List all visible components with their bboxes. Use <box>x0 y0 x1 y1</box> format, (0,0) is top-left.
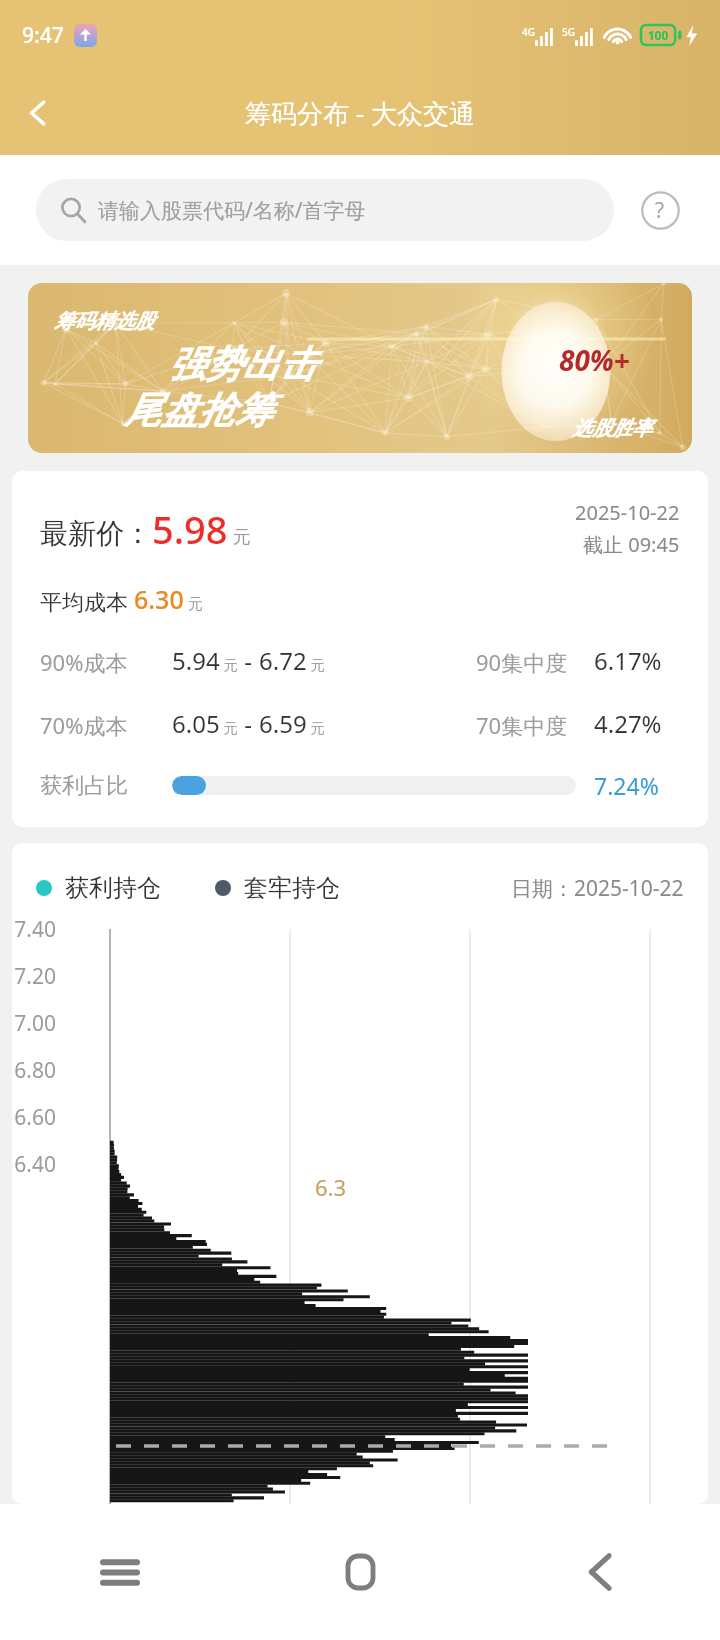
button[interactable]: Help <box>636 186 684 234</box>
staticText: 4.27% <box>594 707 680 740</box>
staticText: 100 <box>640 27 676 43</box>
staticText: 强势出击 <box>168 341 316 388</box>
staticText: 截止 09:45 <box>583 531 680 558</box>
staticText: 套牢持仓 <box>244 873 340 903</box>
staticText: 6.59 <box>259 707 307 740</box>
staticText: 6.72 <box>259 644 307 677</box>
button[interactable]: Back <box>0 70 76 155</box>
staticText: 筹码精选股 <box>54 309 154 334</box>
staticText: 获利持仓 <box>65 873 161 903</box>
button[interactable]: Back <box>480 1504 720 1640</box>
staticText: 70集中度 <box>476 710 568 740</box>
staticText: ? <box>655 196 665 225</box>
staticText: 元 <box>220 655 238 674</box>
staticText: 日期：2025-10-22 <box>511 874 684 903</box>
staticText: 元 <box>184 593 203 613</box>
staticText: 7.24% <box>594 770 680 801</box>
staticText: 元 <box>307 718 325 737</box>
staticText: 90%成本 <box>40 647 172 677</box>
staticText: 6.60 <box>12 1103 56 1132</box>
button[interactable]: Home <box>240 1504 480 1640</box>
staticText: 元 <box>307 655 325 674</box>
staticText: 6.05 <box>172 707 220 740</box>
staticText: 70%成本 <box>40 710 172 740</box>
staticText: 5.98 <box>152 503 228 555</box>
staticText: 元 <box>228 524 251 549</box>
staticText: 6.30 <box>134 582 184 616</box>
staticText: 选股胜率 <box>572 416 652 441</box>
staticText: 9:47 <box>22 21 64 50</box>
staticText: 6.40 <box>12 1150 56 1179</box>
staticText: 2025-10-22 <box>575 499 680 526</box>
staticText: 7.40 <box>12 915 56 944</box>
staticText: 元 <box>220 718 238 737</box>
button[interactable]: 请输入股票代码/名称/首字母 <box>36 179 614 241</box>
staticText: 最新价： <box>40 516 152 551</box>
button[interactable]: 筹码精选股 <box>28 283 692 453</box>
staticText: 80%+ <box>559 341 630 379</box>
staticText: 平均成本 <box>40 586 134 616</box>
staticText: 7.20 <box>12 962 56 991</box>
staticText: 请输入股票代码/名称/首字母 <box>98 196 366 225</box>
staticText: 获利占比 <box>40 772 172 800</box>
staticText: - <box>238 644 259 677</box>
staticText: 6.3 <box>315 1172 347 1202</box>
staticText: 90集中度 <box>476 647 568 677</box>
staticText: 筹码分布 - 大众交通 <box>245 95 475 131</box>
staticText: 4G <box>522 25 535 39</box>
staticText: - <box>238 707 259 740</box>
staticText: 7.00 <box>12 1009 56 1038</box>
staticText: 尾盘抢筹 <box>124 387 272 434</box>
staticText: 5.94 <box>172 644 220 677</box>
staticText: 6.17% <box>594 644 680 677</box>
staticText: 5G <box>562 25 575 39</box>
staticText: 6.80 <box>12 1056 56 1085</box>
button[interactable]: Recents <box>0 1504 240 1640</box>
